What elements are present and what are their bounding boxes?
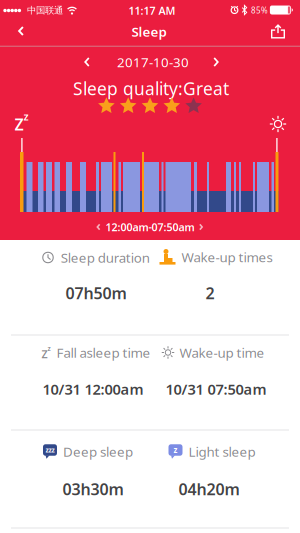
button[interactable]: Share: [265, 18, 291, 44]
staticText: 04h20m: [178, 478, 239, 500]
staticText: Sleep quality:Great: [73, 77, 229, 100]
staticText: 中国联通: [27, 5, 63, 16]
staticText: 10/31 12:00am: [42, 379, 143, 399]
staticText: Sleep: [131, 23, 166, 40]
staticText: z: [23, 109, 28, 123]
staticText: z: [173, 445, 177, 455]
staticText: Fall asleep time: [56, 344, 150, 361]
staticText: z: [47, 344, 50, 353]
staticText: 03h30m: [62, 478, 123, 500]
staticText: Sleep duration: [61, 249, 150, 266]
button[interactable]: Earlier: [91, 218, 106, 236]
staticText: 12:00am-07:50am: [105, 220, 194, 234]
staticText: zzz: [45, 446, 54, 454]
staticText: Z: [14, 114, 23, 135]
staticText: 2017-10-30: [117, 53, 189, 71]
staticText: Wake-up times: [181, 248, 272, 266]
button[interactable]: Back: [9, 17, 33, 45]
button[interactable]: Previous day: [77, 50, 96, 74]
staticText: Wake-up time: [179, 344, 264, 361]
staticText: Light sleep: [188, 443, 255, 460]
staticText: 11:17 AM: [128, 3, 175, 18]
staticText: 10/31 07:50am: [165, 379, 266, 399]
button[interactable]: Next day: [206, 50, 225, 74]
staticText: 07h50m: [65, 282, 126, 304]
staticText: Z: [41, 347, 47, 361]
staticText: 2: [205, 282, 214, 304]
staticText: 85%: [251, 5, 268, 16]
staticText: Deep sleep: [63, 443, 133, 460]
button[interactable]: Later: [193, 218, 209, 236]
